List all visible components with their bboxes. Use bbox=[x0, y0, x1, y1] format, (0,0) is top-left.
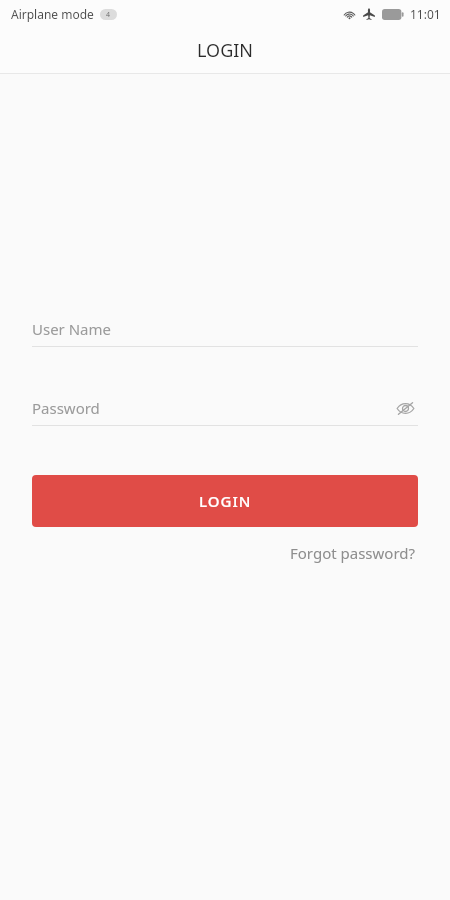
button[interactable]: Forgot password? bbox=[288, 541, 418, 565]
staticText: Airplane mode bbox=[11, 6, 94, 22]
staticText: LOGIN bbox=[197, 38, 254, 63]
staticText: 4 bbox=[106, 10, 111, 20]
button[interactable]: LOGIN bbox=[32, 475, 418, 527]
staticText: User Name bbox=[32, 319, 112, 339]
staticText: Password bbox=[32, 398, 100, 418]
button[interactable]: Show password bbox=[392, 395, 418, 421]
button[interactable]: Password bbox=[32, 391, 418, 425]
staticText: LOGIN bbox=[199, 491, 252, 511]
button[interactable]: User Name bbox=[32, 312, 418, 346]
staticText: 11:01 bbox=[410, 6, 441, 22]
staticText: Forgot password? bbox=[290, 543, 416, 563]
